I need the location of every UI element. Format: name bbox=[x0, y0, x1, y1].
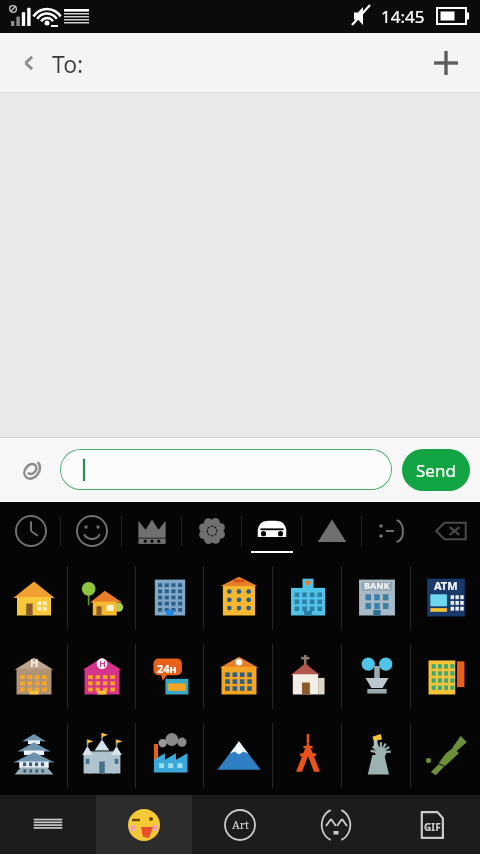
button[interactable]: HOUSE_GARDEN bbox=[68, 559, 136, 637]
button[interactable]: Add bbox=[422, 39, 470, 87]
button[interactable]: OFFICE bbox=[136, 559, 204, 637]
staticText: BANK bbox=[364, 579, 390, 591]
button[interactable]: Keyboard bbox=[0, 795, 96, 854]
button[interactable]: POST bbox=[204, 559, 273, 637]
button[interactable]: Send bbox=[402, 449, 470, 491]
button[interactable]: CONVENIENCE bbox=[136, 637, 204, 716]
button[interactable]: HOSPITAL bbox=[273, 559, 342, 637]
staticText: Art bbox=[232, 817, 249, 832]
button[interactable]: FUJI bbox=[204, 716, 273, 795]
button[interactable]: EU_CASTLE bbox=[68, 716, 136, 795]
button[interactable]: JP_CASTLE bbox=[0, 716, 68, 795]
button[interactable]: STORE bbox=[411, 637, 480, 716]
button[interactable]: SCHOOL bbox=[204, 637, 273, 716]
button[interactable]: HOUSE bbox=[0, 559, 68, 637]
button[interactable]: ATM bbox=[411, 559, 480, 637]
button[interactable]: CHURCH bbox=[273, 637, 342, 716]
button[interactable]: Nature bbox=[182, 502, 242, 559]
button[interactable]: Places and travel bbox=[242, 502, 302, 559]
staticText: To: bbox=[52, 48, 84, 79]
button[interactable]: LOVE_HOTEL bbox=[68, 637, 136, 716]
button[interactable]: FACTORY bbox=[136, 716, 204, 795]
button[interactable]: Art bbox=[192, 795, 288, 854]
button[interactable]: Emoji bbox=[96, 795, 192, 854]
button[interactable]: FOUNTAIN bbox=[342, 637, 411, 716]
button[interactable]: Backspace bbox=[422, 502, 480, 559]
staticText: H bbox=[30, 655, 39, 670]
button[interactable]: LIBERTY bbox=[342, 716, 411, 795]
button[interactable]: Symbols bbox=[302, 502, 362, 559]
button[interactable]: GIF bbox=[384, 795, 480, 854]
staticText: H bbox=[99, 657, 106, 669]
button[interactable]: Back bbox=[8, 42, 50, 84]
button[interactable] bbox=[60, 449, 392, 490]
staticText: ATM bbox=[434, 578, 458, 593]
button[interactable]: Kaomoji bbox=[288, 795, 384, 854]
staticText: Send bbox=[416, 459, 456, 482]
staticText: GIF bbox=[424, 820, 441, 834]
button[interactable]: Emoticons bbox=[362, 502, 422, 559]
button[interactable]: Smileys bbox=[61, 502, 122, 559]
button[interactable]: BANK bbox=[342, 559, 411, 637]
staticText: 14:45 bbox=[381, 5, 425, 28]
staticText: 24н bbox=[157, 661, 177, 676]
button[interactable]: TOWER bbox=[273, 716, 342, 795]
button[interactable]: Recent bbox=[0, 502, 61, 559]
button[interactable]: People bbox=[122, 502, 182, 559]
button[interactable]: JAPAN bbox=[411, 716, 480, 795]
button[interactable]: HOTEL bbox=[0, 637, 68, 716]
button[interactable]: Attach file bbox=[8, 447, 54, 493]
